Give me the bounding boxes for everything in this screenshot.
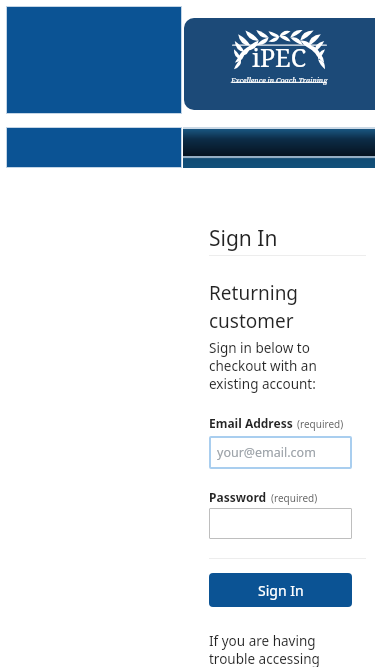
staticText: (required) — [271, 491, 318, 505]
staticText: iPEC — [252, 40, 307, 74]
staticText: Returning — [209, 280, 299, 306]
staticText: Password — [209, 489, 267, 505]
staticText: Excellence in Coach Training — [231, 75, 328, 85]
button[interactable]: Sign In — [209, 573, 352, 607]
button[interactable]: iPEC home — [184, 18, 375, 110]
button[interactable]: Menu — [183, 127, 375, 168]
button[interactable]: your@email.com — [209, 436, 352, 469]
staticText: customer — [209, 308, 294, 334]
staticText: (required) — [297, 417, 344, 431]
staticText: checkout with an — [209, 357, 317, 375]
staticText: Sign In — [209, 224, 278, 253]
staticText: your@email.com — [217, 444, 316, 461]
staticText: trouble accessing — [209, 650, 320, 667]
staticText: existing account: — [209, 375, 316, 393]
staticText: If you are having — [209, 632, 316, 650]
button[interactable]: Password — [209, 508, 352, 539]
staticText: Email Address — [209, 415, 293, 431]
staticText: Sign in below to — [209, 339, 310, 357]
staticText: Sign In — [258, 581, 304, 600]
